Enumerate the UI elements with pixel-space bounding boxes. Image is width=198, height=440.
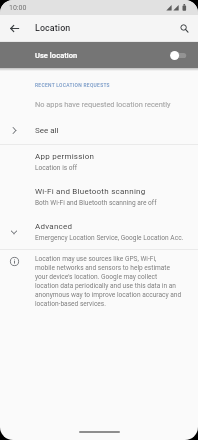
staticText: App permission [35,152,95,161]
staticText: 10:00 [9,4,27,12]
staticText: Location [35,23,71,33]
staticText: Location is off [35,164,78,172]
staticText: Wi-Fi and Bluetooth scanning [35,187,146,196]
staticText: Use location [35,51,78,60]
button[interactable]: See all [0,117,198,144]
staticText: Location may use sources like GPS, Wi-Fi… [35,255,182,308]
button[interactable]: Search [174,18,194,38]
button[interactable]: App permission [0,152,198,186]
button[interactable]: Use location [0,42,198,68]
staticText: Emergency Location Service, Google Locat… [35,234,184,242]
button[interactable]: Wi-Fi and Bluetooth scanning [0,187,198,221]
staticText: See all [35,126,59,135]
staticText: No apps have requested location recently [35,100,171,109]
other: Signal and battery status [166,4,187,11]
staticText: Advanced [35,222,73,231]
staticText: RECENT LOCATION REQUESTS [35,82,110,88]
staticText: Both Wi-Fi and Bluetooth scanning are of… [35,199,157,207]
button[interactable]: Advanced [0,215,198,249]
other: Use location toggle [170,50,187,61]
button[interactable]: Navigate up [4,18,24,38]
